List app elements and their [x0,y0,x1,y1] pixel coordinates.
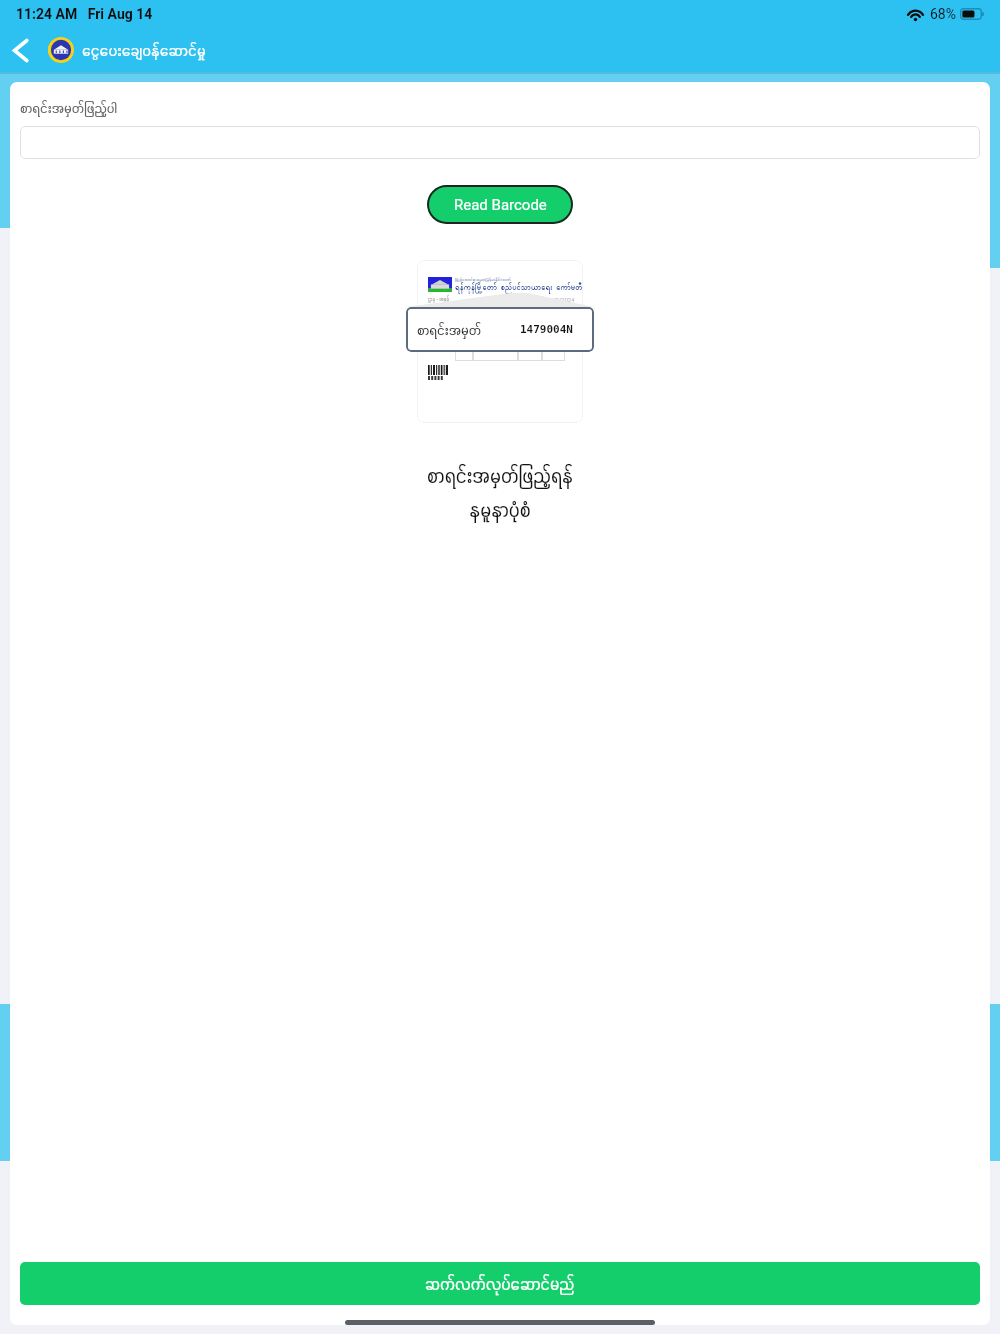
staticText: 14/7/2024 [546,296,575,303]
staticText: ရန်ကုန်မြို့တော် စည်ပင်သာယာရေး ကော်မတီ [455,283,575,294]
staticText: ကျပ်/ပြား [554,307,575,315]
staticText: Read Barcode [454,196,547,214]
staticText: ဌာန - အခွန် [428,296,450,303]
staticText: ဆက်လက်လုပ်ဆောင်မည် [425,1273,575,1294]
staticText: 11:24 AM Fri Aug 14 [16,6,153,22]
button[interactable]: Back [0,30,40,70]
staticText: နမူနာပုံစံ [10,497,990,522]
button[interactable] [20,126,980,159]
staticText: စာရင်းအမှတ်ဖြည့်ပါ [20,99,117,117]
button[interactable]: ဆက်လက်လုပ်ဆောင်မည် [20,1262,980,1305]
staticText: စာရင်းအမှတ်ဖြည့်ရန် [10,463,990,488]
staticText: 68% [930,6,956,22]
staticText: ငွေပေးချေဝန်ဆောင်မှု [82,40,206,60]
button[interactable]: Read Barcode [427,185,573,224]
staticText: ပြည်ထောင်စုသမ္မတမြန်မာနိုင်ငံတော် [455,277,511,283]
staticText: စာရင်းအမှတ် [417,321,482,339]
staticText: ◀ [540,307,548,314]
staticText: 1479004N [520,323,573,336]
